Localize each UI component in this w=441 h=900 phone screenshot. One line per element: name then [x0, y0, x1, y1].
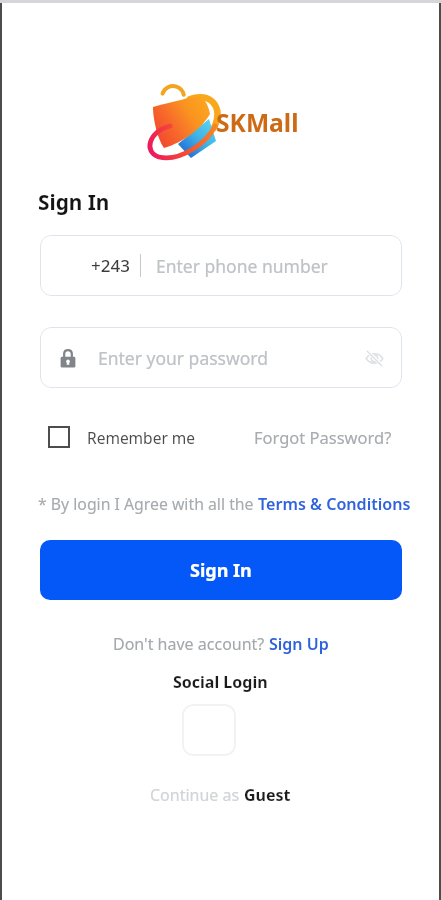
button[interactable]: Forgot Password? — [246, 420, 400, 454]
button[interactable]: Remember me — [40, 420, 196, 454]
staticText: Guest — [244, 784, 291, 806]
staticText: Continue as — [150, 784, 244, 806]
staticText: Don't have account? — [113, 633, 269, 655]
button[interactable]: Enter your password — [40, 327, 402, 388]
button[interactable]: Sign Up — [269, 633, 329, 655]
staticText: Remember me — [87, 427, 196, 448]
staticText: Sign In — [190, 558, 252, 583]
button[interactable]: Terms & Conditions — [258, 493, 411, 515]
button[interactable]: +243 — [40, 235, 402, 296]
staticText: Enter phone number — [156, 254, 328, 278]
button[interactable]: Social login — [182, 704, 236, 756]
button[interactable]: Sign In — [40, 540, 402, 600]
staticText: * By login I Agree with all the — [38, 493, 258, 515]
staticText: Forgot Password? — [254, 426, 392, 448]
staticText: Enter your password — [98, 346, 268, 370]
staticText: +243 — [91, 254, 130, 277]
staticText: SKMall — [216, 106, 299, 140]
button[interactable]: Show password — [358, 342, 390, 374]
staticText: Sign In — [38, 188, 110, 216]
button[interactable]: Continue as — [0, 784, 441, 806]
staticText: Social Login — [173, 671, 268, 693]
